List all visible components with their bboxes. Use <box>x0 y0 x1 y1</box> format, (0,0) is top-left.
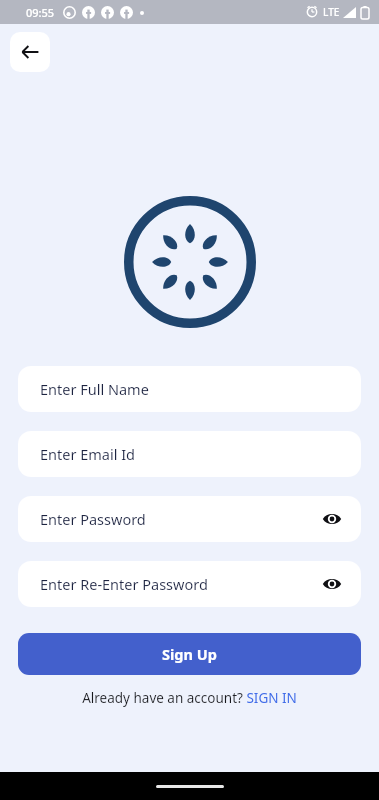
button[interactable]: Back <box>10 32 50 72</box>
staticText: LTE <box>323 5 340 19</box>
button[interactable]: Sign Up <box>18 633 361 675</box>
staticText: Enter Full Name <box>40 379 149 399</box>
staticText: Already have an account? SIGN IN <box>82 689 297 707</box>
staticText: 09:55 <box>26 5 55 20</box>
button[interactable]: Show password <box>319 506 345 532</box>
staticText: Enter Email Id <box>40 444 136 464</box>
button[interactable]: Enter Password <box>18 496 361 542</box>
staticText: Enter Re-Enter Password <box>40 574 208 594</box>
button[interactable]: Enter Email Id <box>18 431 361 477</box>
button[interactable]: Already have an account? SIGN IN <box>0 689 379 707</box>
staticText: Enter Password <box>40 509 146 529</box>
button[interactable]: Show password <box>319 571 345 597</box>
button[interactable]: Enter Full Name <box>18 366 361 412</box>
button[interactable]: Enter Re-Enter Password <box>18 561 361 607</box>
staticText: Sign Up <box>162 644 217 664</box>
